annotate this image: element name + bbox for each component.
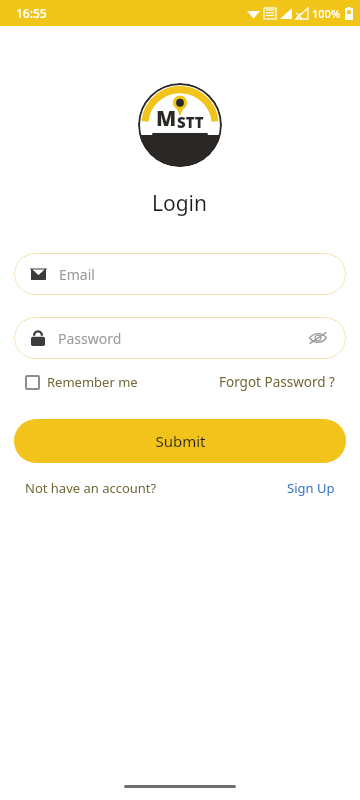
staticText: Email xyxy=(59,265,329,284)
button[interactable]: Sign Up xyxy=(287,479,335,497)
staticText: Submit xyxy=(155,431,206,451)
button[interactable]: Email xyxy=(14,253,346,295)
staticText: M xyxy=(156,104,177,133)
button[interactable]: Show password xyxy=(307,327,329,349)
staticText: 100% xyxy=(312,6,341,21)
staticText: Not have an account? xyxy=(25,479,157,497)
button[interactable]: Submit xyxy=(14,419,346,463)
button[interactable]: Password xyxy=(14,317,346,359)
button[interactable]: Forgot Password ? xyxy=(219,373,335,391)
staticText: 16:55 xyxy=(16,5,47,21)
staticText: Sign Up xyxy=(287,479,335,497)
staticText: Login xyxy=(152,189,208,218)
staticText: STT xyxy=(177,112,204,132)
button[interactable]: Remember me xyxy=(25,373,138,391)
staticText: Forgot Password ? xyxy=(219,373,335,391)
staticText: Remember me xyxy=(47,373,138,391)
staticText: Password xyxy=(58,329,307,348)
